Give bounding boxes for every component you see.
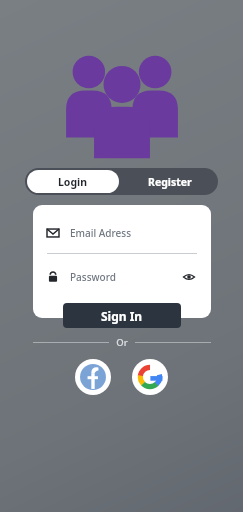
button[interactable]: Show password [179,267,199,287]
staticText: Or [116,336,128,349]
staticText: Register [148,175,192,189]
button[interactable]: Sign In [63,303,181,328]
button[interactable]: Sign in with Google [132,359,168,395]
button[interactable]: Sign in with Facebook [75,359,111,395]
staticText: Login [58,175,88,189]
button[interactable]: Register [121,168,218,195]
button[interactable]: Email Adress [33,222,211,244]
staticText: Password [70,270,116,284]
staticText: Sign In [101,308,143,324]
staticText: Email Adress [70,226,131,240]
button[interactable]: Login [27,170,119,193]
button[interactable]: Password [33,266,211,288]
